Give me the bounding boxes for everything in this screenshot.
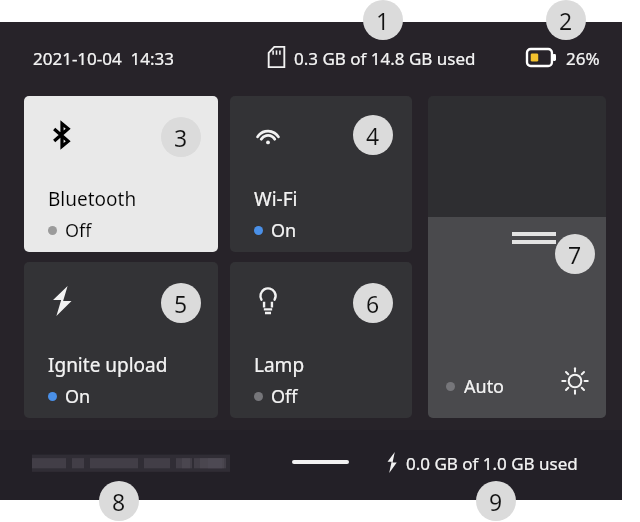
staticText: Off — [271, 384, 298, 409]
staticText: 0.3 GB of 14.8 GB used — [294, 47, 476, 70]
staticText: 5 — [174, 288, 188, 319]
staticText: Lamp — [254, 352, 305, 378]
staticText: 2021-10-04 14:33 — [33, 47, 175, 70]
staticText: On — [65, 384, 91, 409]
staticText: Bluetooth — [48, 186, 137, 212]
staticText: 26% — [566, 47, 600, 70]
button[interactable]: Ignite upload — [24, 262, 218, 418]
button[interactable]: Bluetooth — [24, 96, 218, 252]
staticText: 4 — [366, 120, 380, 151]
staticText: 3 — [174, 122, 188, 153]
staticText: 9 — [489, 486, 503, 517]
button[interactable]: Brightness — [428, 96, 606, 418]
staticText: On — [271, 218, 297, 243]
staticText: Wi-Fi — [254, 186, 298, 212]
button[interactable]: Wi-Fi — [230, 96, 412, 252]
staticText: 6 — [366, 288, 380, 319]
staticText: 8 — [112, 486, 126, 517]
staticText: 7 — [568, 239, 582, 270]
button[interactable]: Lamp — [230, 262, 412, 418]
staticText: Off — [65, 218, 92, 243]
staticText: 0.0 GB of 1.0 GB used — [406, 452, 578, 475]
staticText: Auto — [464, 374, 505, 399]
staticText: Ignite upload — [48, 352, 168, 378]
staticText: 1 — [376, 5, 390, 36]
staticText: 2 — [559, 5, 573, 36]
